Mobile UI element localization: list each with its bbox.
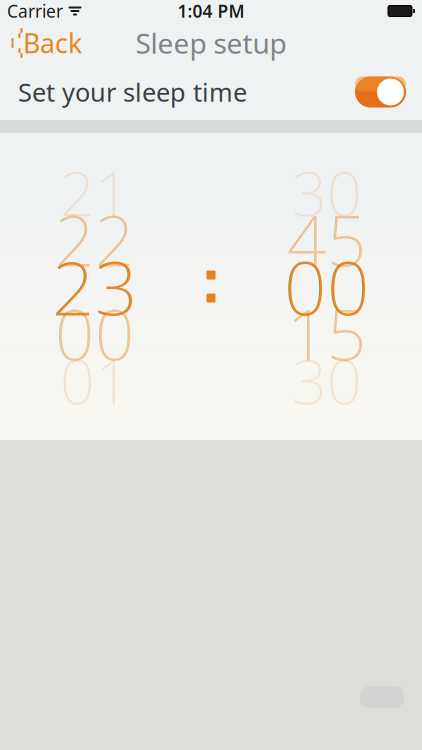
staticText: 45 [287,193,367,286]
staticText: Sleep setup [135,24,286,62]
staticText: 15 [287,287,367,380]
staticText: 00 [284,237,370,336]
staticText: 30 [292,340,362,421]
staticText: 22 [55,193,135,286]
staticText: Carrier [7,0,63,22]
staticText: 01 [60,340,130,421]
staticText: Set your sleep time [18,75,247,109]
staticText: Back [23,25,82,61]
staticText: 21 [60,152,130,233]
button[interactable]: Back [0,19,82,67]
staticText: 30 [292,152,362,233]
staticText: 23 [52,237,138,336]
button[interactable]: Set your sleep time [0,64,422,120]
staticText: 1:04 PM [177,0,244,22]
staticText: 00 [55,287,135,380]
